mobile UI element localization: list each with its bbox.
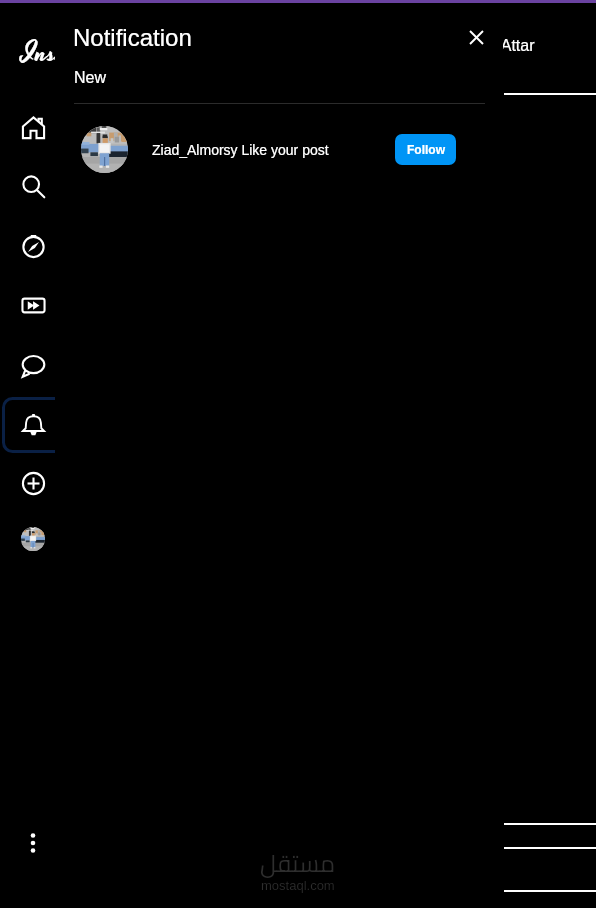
button[interactable]: Follow [395, 134, 456, 165]
staticText: Follow [407, 143, 445, 156]
staticText: mostaql.com [261, 878, 335, 893]
button[interactable]: Profile [21, 527, 45, 551]
staticText: Instagram [22, 33, 55, 74]
staticText: New [74, 69, 107, 87]
staticText: Ziad_Almorsy Like your post [152, 142, 329, 158]
staticText: Mohamed Attar [426, 37, 535, 55]
button[interactable]: Reels [13, 285, 53, 325]
button[interactable]: Ziad_Almorsy Like your post [55, 126, 503, 174]
button[interactable]: Close [458, 19, 495, 56]
button[interactable]: Explore [13, 226, 53, 266]
button[interactable]: More options [13, 823, 53, 863]
button[interactable]: Create [13, 463, 53, 503]
button[interactable]: Notifications [13, 405, 53, 445]
button[interactable]: Messages [13, 345, 53, 385]
button[interactable]: Search [13, 166, 53, 206]
staticText: Notification [73, 24, 192, 51]
button[interactable]: Home [13, 107, 53, 147]
staticText: مستقل [260, 841, 336, 886]
